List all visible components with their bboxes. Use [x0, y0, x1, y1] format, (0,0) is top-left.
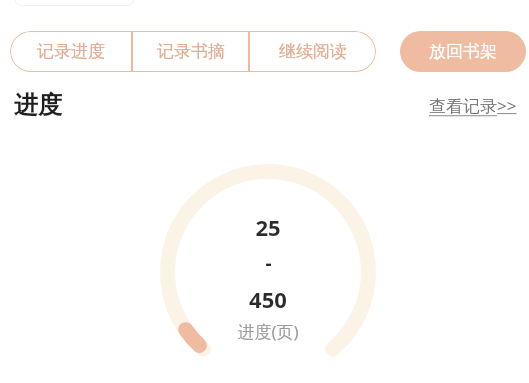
staticText: 记录进度 — [37, 41, 105, 62]
staticText: 查看记录>> — [429, 94, 517, 117]
staticText: 450 — [249, 284, 287, 314]
staticText: 进度(页) — [237, 320, 299, 343]
staticText: 进度 — [14, 90, 62, 120]
staticText: 25 — [255, 212, 281, 242]
staticText: 继续阅读 — [279, 41, 347, 62]
staticText: 放回书架 — [429, 41, 497, 62]
button[interactable]: 查看记录>> — [421, 90, 529, 121]
staticText: - — [265, 250, 272, 276]
button[interactable]: 放回书架 — [400, 31, 526, 72]
button[interactable]: 记录书摘 — [132, 31, 249, 72]
button[interactable]: 记录进度 — [10, 31, 132, 72]
staticText: 记录书摘 — [157, 41, 225, 62]
button[interactable]: 继续阅读 — [249, 31, 376, 72]
